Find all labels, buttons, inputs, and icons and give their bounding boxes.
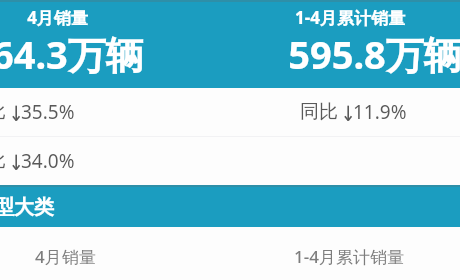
staticText: 34.0%: [21, 148, 75, 174]
staticText: 4月销量: [27, 6, 88, 29]
staticText: 环比: [0, 149, 6, 173]
staticText: 35.5%: [21, 99, 75, 125]
button[interactable]: 同比: [0, 88, 460, 136]
button[interactable]: 车型大类: [0, 185, 460, 227]
staticText: 1-4月累计销量: [294, 245, 404, 268]
staticText: 4月销量: [35, 245, 96, 268]
staticText: 595.8万辆: [288, 28, 460, 80]
button[interactable]: 1-4月累计销量: [230, 245, 460, 268]
staticText: 车型大类: [0, 195, 54, 220]
staticText: 1-4月累计销量: [295, 6, 405, 29]
staticText: 11.9%: [353, 99, 407, 125]
button[interactable]: 环比: [0, 137, 460, 185]
staticText: 164.3万辆: [0, 28, 144, 80]
button[interactable]: 4月销量: [0, 0, 460, 88]
staticText: 同比: [300, 100, 338, 124]
staticText: 同比: [0, 100, 6, 124]
button[interactable]: 4月销量: [0, 245, 230, 268]
